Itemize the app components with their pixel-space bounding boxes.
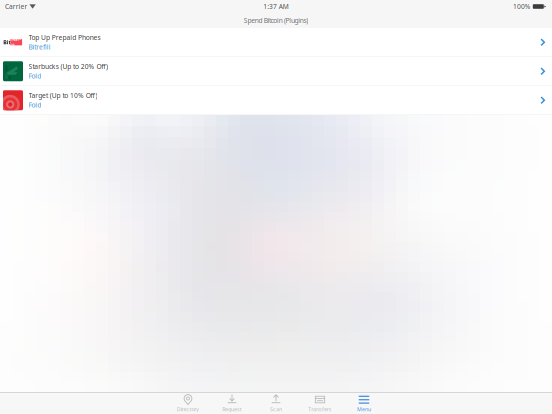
button[interactable]: Menu — [342, 393, 386, 414]
button[interactable]: Directory — [166, 393, 210, 414]
button[interactable]: Target (Up to 10% Off) — [0, 86, 552, 115]
staticText: Fold — [28, 71, 41, 80]
staticText: Bitrefill — [28, 43, 51, 51]
button[interactable]: Scan — [254, 393, 298, 414]
button[interactable]: Starbucks (Up to 20% Off) — [0, 57, 552, 86]
button[interactable]: Bit — [0, 28, 552, 57]
button[interactable]: Transfers — [298, 393, 342, 414]
staticText: Starbucks (Up to 20% Off) — [28, 62, 108, 71]
staticText: Scan — [270, 406, 282, 413]
staticText: Fold — [28, 100, 41, 109]
staticText: Request — [222, 406, 242, 413]
staticText: Transfers — [308, 406, 332, 413]
staticText: Carrier — [5, 2, 27, 11]
staticText: Directory — [177, 406, 199, 413]
staticText: refill — [11, 35, 21, 49]
staticText: 1:37 AM — [263, 2, 289, 11]
staticText: Menu — [357, 406, 371, 413]
staticText: Top Up Prepaid Phones — [28, 33, 100, 42]
staticText: Target (Up to 10% Off) — [28, 91, 97, 100]
staticText: 100% — [513, 2, 531, 11]
staticText: Spend Bitcoin (Plugins) — [244, 16, 308, 25]
staticText: Bit — [3, 39, 10, 46]
button[interactable]: Request — [210, 393, 254, 414]
